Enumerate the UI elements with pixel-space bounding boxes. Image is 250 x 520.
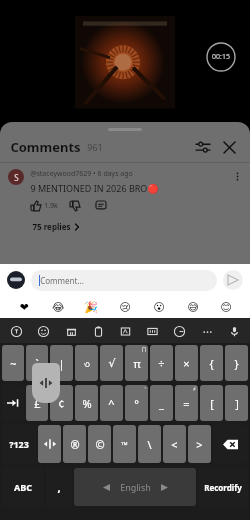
button[interactable]: , — [46, 467, 72, 507]
staticText: } — [234, 356, 239, 371]
staticText: \ — [147, 437, 152, 452]
staticText: 00:15 — [212, 52, 230, 62]
staticText: English — [120, 481, 151, 493]
button[interactable]: Reply — [95, 200, 107, 212]
button[interactable]: 75 replies — [30, 219, 82, 234]
button[interactable]: 1.9k — [30, 200, 59, 212]
button[interactable]: clip — [87, 320, 109, 342]
button[interactable]: < — [163, 425, 186, 463]
button[interactable]: ® — [63, 425, 86, 463]
button[interactable]: ∏ — [125, 345, 148, 381]
staticText: £ — [34, 396, 41, 411]
button[interactable]: 😢 — [115, 297, 135, 317]
button[interactable]: ÷ — [150, 345, 173, 381]
button[interactable]: translate — [114, 320, 136, 342]
staticText: _ — [159, 396, 164, 411]
staticText: 😅 — [187, 301, 199, 314]
button[interactable]: > — [188, 425, 211, 463]
staticText: ৩ — [84, 358, 90, 369]
button[interactable]: ABC — [2, 467, 44, 507]
button[interactable]: Send — [223, 270, 243, 290]
staticText: √ — [108, 357, 116, 370]
staticText: | — [58, 356, 65, 371]
button[interactable]: more — [196, 320, 218, 342]
button[interactable]: ❤️ — [14, 297, 34, 317]
staticText: 😮 — [153, 301, 165, 314]
staticText: Recordify — [204, 482, 242, 493]
staticText: 1.9k — [44, 201, 58, 211]
staticText: 😂 — [52, 301, 65, 314]
staticText: ABC — [14, 481, 32, 493]
button[interactable]: 😅 — [183, 297, 203, 317]
button[interactable]: × — [175, 345, 198, 381]
button[interactable]: ৩ — [75, 345, 98, 381]
staticText: ~ — [10, 356, 17, 371]
button[interactable]: % — [75, 385, 98, 421]
button[interactable]: English — [74, 468, 196, 506]
button[interactable]: [ — [200, 385, 223, 421]
button[interactable]: 😊 — [216, 297, 236, 317]
button[interactable] — [213, 425, 248, 463]
button[interactable]: { — [200, 345, 223, 381]
button[interactable]: G — [168, 320, 190, 342]
staticText: ™ — [121, 439, 128, 450]
button[interactable]: £ — [26, 385, 48, 421]
button[interactable]: ` — [26, 345, 48, 381]
staticText: [ — [210, 396, 214, 411]
button[interactable]: ¢ — [50, 385, 73, 421]
staticText: ` — [35, 356, 39, 371]
staticText: % — [82, 396, 92, 411]
button[interactable]: 123 — [141, 320, 163, 342]
button[interactable]: ™ — [113, 425, 136, 463]
staticText: 75 replies — [32, 221, 71, 232]
button[interactable]: 😮 — [149, 297, 169, 317]
button[interactable]: Close — [216, 134, 242, 160]
staticText: 🎉 — [84, 301, 98, 314]
button[interactable]: ' — [125, 385, 148, 421]
staticText: < — [171, 437, 178, 452]
staticText: Comment... — [40, 275, 84, 286]
staticText: > — [196, 437, 203, 452]
button[interactable]: } — [225, 345, 248, 381]
button[interactable] — [38, 425, 61, 463]
staticText: π — [133, 356, 141, 371]
button[interactable]: More options — [230, 169, 244, 183]
button[interactable]: Your account — [7, 271, 25, 289]
button[interactable] — [2, 385, 24, 421]
staticText: ≠ — [193, 386, 196, 393]
button[interactable]: mic — [223, 320, 245, 342]
button[interactable]: ~ — [2, 345, 24, 381]
button[interactable]: | — [50, 345, 73, 381]
staticText: ÷ — [158, 356, 165, 371]
button[interactable]: ≠ — [175, 385, 198, 421]
staticText: ' — [144, 386, 146, 393]
button[interactable]: _ — [150, 385, 173, 421]
button[interactable]: Sort comments — [190, 134, 216, 160]
staticText: = — [183, 396, 190, 411]
button[interactable]: √ — [100, 345, 123, 381]
staticText: , — [57, 480, 61, 495]
staticText: 😊 — [220, 301, 232, 314]
button[interactable]: \ — [138, 425, 161, 463]
button[interactable]: ?123 — [2, 425, 36, 463]
staticText: 961 — [87, 141, 103, 153]
staticText: × — [183, 356, 190, 371]
staticText: @staceywood7629 • 6 days ago — [30, 169, 133, 179]
button[interactable]: GIF — [5, 320, 27, 342]
staticText: ∏ — [142, 346, 146, 352]
button[interactable]: 😂 — [48, 297, 68, 317]
button[interactable]: ] — [225, 385, 248, 421]
button[interactable]: Dislike — [69, 200, 81, 212]
button[interactable]: Recordify — [198, 467, 248, 507]
button[interactable]: 🎉 — [81, 297, 101, 317]
staticText: Comments — [10, 138, 81, 156]
button[interactable]: store — [60, 320, 82, 342]
staticText: S — [14, 172, 19, 183]
button[interactable]: © — [88, 425, 111, 463]
staticText: { — [209, 356, 214, 371]
button[interactable]: Comment... — [31, 270, 217, 291]
staticText: ?123 — [9, 438, 29, 450]
button[interactable]: ^ — [100, 385, 123, 421]
staticText: ¢ — [58, 396, 65, 411]
button[interactable]: emoji — [32, 320, 54, 342]
